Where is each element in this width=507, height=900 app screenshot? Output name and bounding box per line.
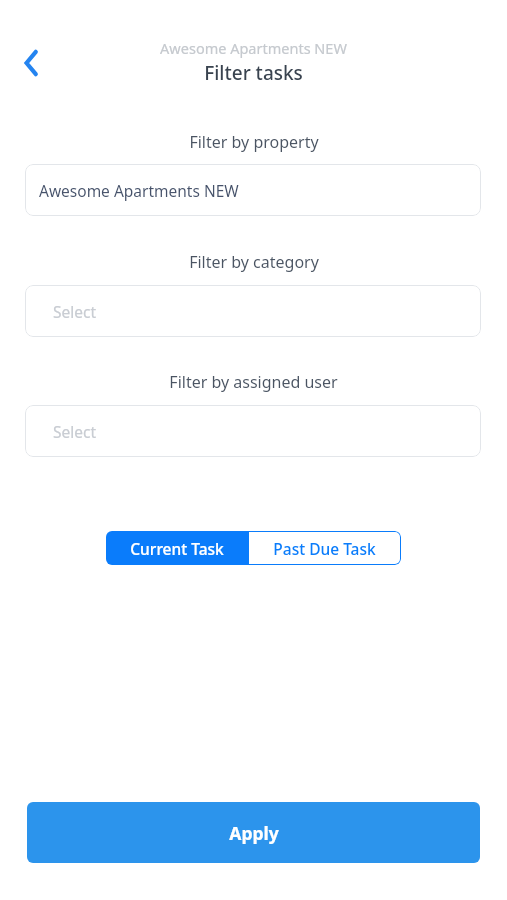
button[interactable]: Awesome Apartments NEW [25,164,481,216]
staticText: Filter tasks [204,60,303,86]
button[interactable]: Select [25,285,481,337]
staticText: Apply [229,821,279,845]
staticText: Select [53,421,97,442]
button[interactable]: Select [25,405,481,457]
staticText: Awesome Apartments NEW [160,38,347,58]
staticText: Filter by property [189,131,319,153]
button[interactable]: Apply [27,802,480,863]
staticText: Filter by assigned user [169,371,338,393]
staticText: Current Task [130,538,224,559]
staticText: Filter by category [189,251,319,273]
button[interactable]: Past Due Task [248,531,401,565]
staticText: Past Due Task [273,538,376,559]
button[interactable]: Current Task [106,531,248,565]
staticText: Select [53,301,97,322]
staticText: Awesome Apartments NEW [39,180,239,201]
button[interactable]: Back [8,41,54,85]
